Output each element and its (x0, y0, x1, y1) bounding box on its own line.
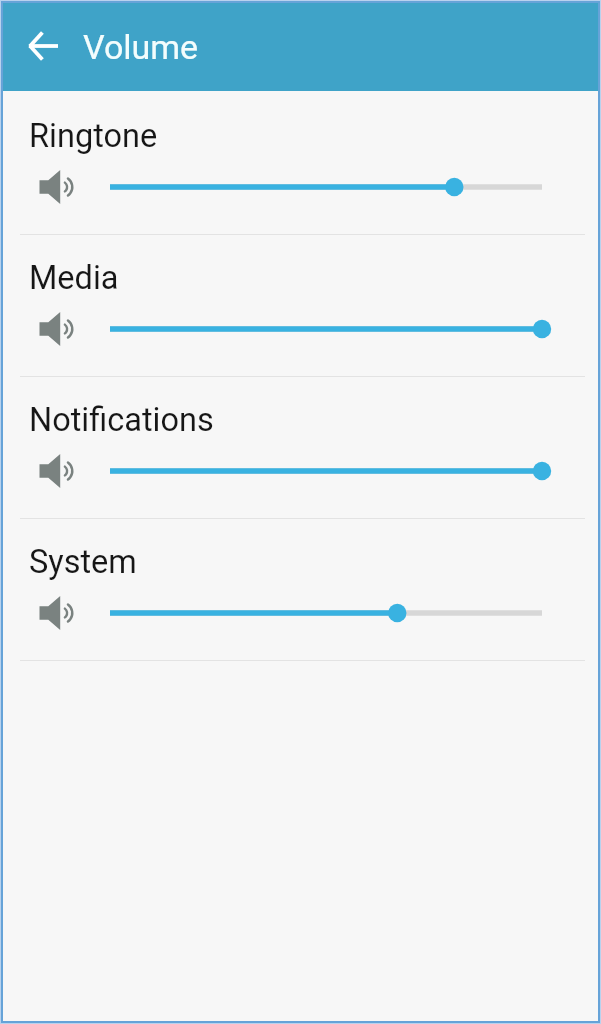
button[interactable]: Media volume (98, 313, 554, 345)
button[interactable]: Mute System (35, 594, 75, 632)
button[interactable]: Mute Notifications (35, 452, 75, 490)
button[interactable]: System volume (98, 597, 554, 629)
button[interactable]: Mute Ringtone (35, 168, 75, 206)
button[interactable]: Navigate back (19, 22, 67, 70)
button[interactable]: Notifications volume (98, 455, 554, 487)
button[interactable]: Media (29, 259, 119, 297)
button[interactable]: Notifications (29, 401, 214, 439)
button[interactable]: Mute Media (35, 310, 75, 348)
button[interactable]: System (29, 543, 137, 581)
staticText: Volume (83, 27, 199, 67)
button[interactable]: Ringtone (29, 117, 158, 155)
button[interactable]: Ringtone volume (98, 171, 554, 203)
